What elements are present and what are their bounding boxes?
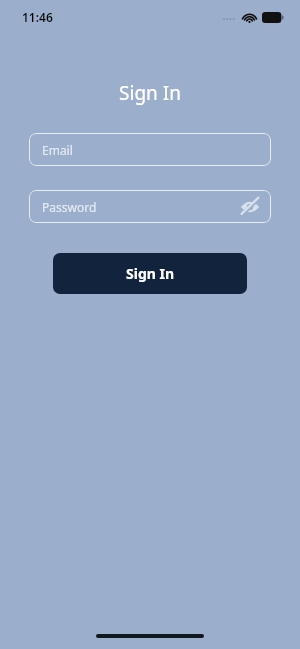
staticText: Password [42, 199, 239, 215]
button[interactable]: Password [29, 190, 271, 223]
button[interactable]: Sign In [53, 253, 247, 294]
staticText: Sign In [119, 80, 181, 106]
staticText: Email [42, 142, 261, 158]
staticText: Sign In [126, 264, 175, 283]
button[interactable]: Email [29, 133, 271, 166]
staticText: 11:46 [22, 9, 53, 25]
button[interactable]: Show password [239, 196, 261, 218]
